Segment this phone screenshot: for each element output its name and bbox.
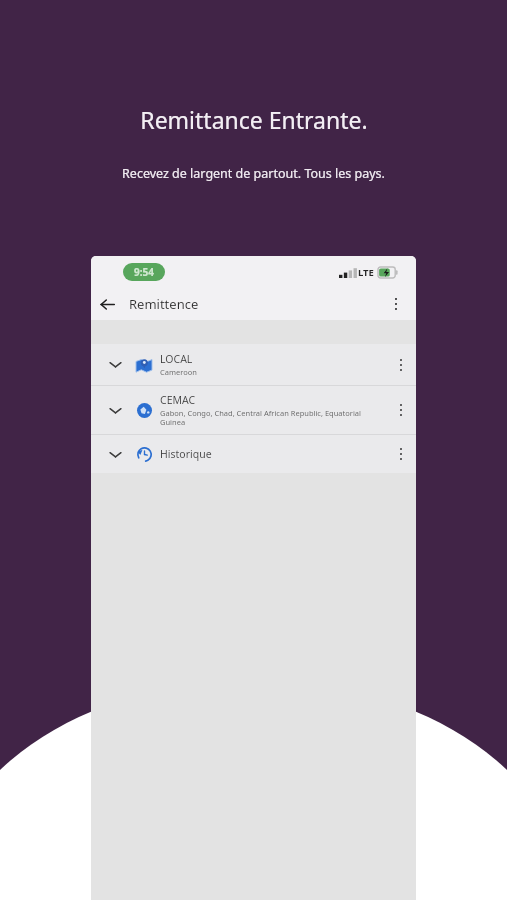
staticText: LTE (358, 266, 374, 279)
button[interactable]: More options (394, 440, 408, 468)
staticText: CEMAC (160, 393, 196, 407)
staticText: Cameroon (160, 367, 197, 377)
button[interactable]: LOCAL (91, 344, 416, 385)
staticText: Historique (160, 447, 212, 461)
button[interactable]: More options (380, 288, 412, 320)
button[interactable]: More options (394, 396, 408, 424)
staticText: 9:54 (134, 265, 154, 279)
button[interactable]: Historique (91, 435, 416, 473)
button[interactable]: More options (394, 351, 408, 379)
button[interactable]: CEMAC (91, 386, 416, 434)
staticText: Remittance Entrante. (140, 104, 368, 135)
staticText: LOCAL (160, 352, 193, 366)
button[interactable]: Back (91, 288, 123, 320)
staticText: Recevez de largent de partout. Tous les … (122, 165, 385, 182)
staticText: Remittence (129, 295, 199, 313)
staticText: Gabon, Congo, Chad, Central African Repu… (160, 408, 361, 427)
